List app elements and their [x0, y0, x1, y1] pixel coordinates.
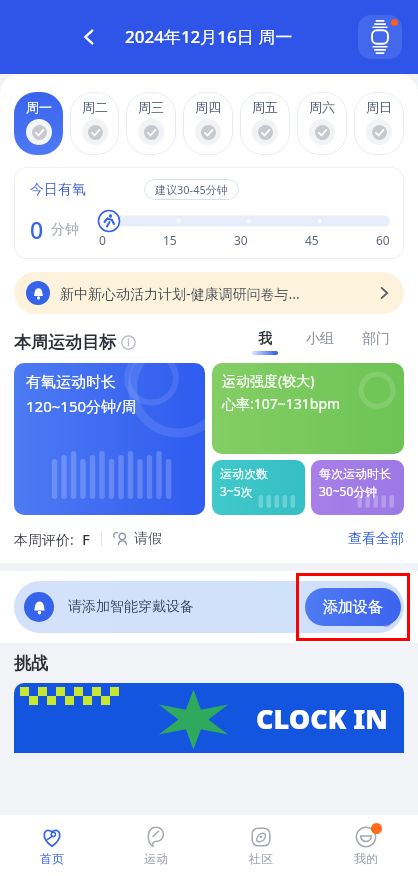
- button[interactable]: 部门: [348, 330, 404, 355]
- button[interactable]: Info: [121, 335, 136, 350]
- staticText: 心率:107~131bpm: [222, 394, 341, 413]
- button[interactable]: 周二: [70, 92, 119, 155]
- staticText: 3~5次: [220, 483, 253, 499]
- button[interactable]: 周六: [297, 92, 347, 155]
- staticText: 本周运动目标: [14, 332, 116, 353]
- button[interactable]: Watch device: [358, 15, 402, 59]
- button[interactable]: 运动强度(较大): [212, 363, 404, 454]
- staticText: 2024年12月16日 周一: [125, 25, 293, 48]
- button[interactable]: 我: [238, 330, 292, 355]
- button[interactable]: 今日有氧: [14, 167, 404, 259]
- staticText: 45: [305, 232, 319, 248]
- staticText: 建议30-45分钟: [155, 182, 228, 197]
- button[interactable]: 新中新心动活力计划-健康调研问卷与...: [14, 272, 404, 314]
- button[interactable]: 运动: [104, 815, 208, 876]
- staticText: 30: [234, 232, 248, 248]
- staticText: 运动强度(较大): [222, 371, 315, 390]
- button[interactable]: 我的: [313, 815, 418, 876]
- staticText: 请假: [134, 530, 162, 548]
- staticText: 新中新心动活力计划-健康调研问卷与...: [60, 284, 376, 303]
- staticText: 0: [30, 214, 44, 245]
- button[interactable]: 周一: [14, 92, 63, 155]
- staticText: 请添加智能穿戴设备: [68, 598, 194, 616]
- staticText: 周一: [26, 99, 52, 115]
- button[interactable]: 请添加智能穿戴设备: [14, 581, 404, 633]
- staticText: 30~50分钟: [319, 483, 378, 499]
- staticText: 部门: [362, 330, 390, 348]
- button[interactable]: 小组: [292, 330, 348, 355]
- button[interactable]: 首页: [0, 815, 104, 876]
- button[interactable]: 周三: [126, 92, 176, 155]
- staticText: 周五: [252, 99, 278, 115]
- staticText: 运动次数: [220, 466, 268, 481]
- staticText: 周二: [82, 99, 108, 115]
- button[interactable]: 请假: [113, 530, 162, 548]
- button[interactable]: 周四: [183, 92, 233, 155]
- button[interactable]: 周五: [240, 92, 290, 155]
- button[interactable]: 查看全部: [348, 530, 404, 548]
- staticText: 挑战: [14, 653, 48, 674]
- button[interactable]: 每次运动时长: [311, 460, 404, 515]
- button[interactable]: CLOCK IN: [14, 683, 404, 753]
- staticText: 15: [163, 232, 177, 248]
- staticText: 0: [99, 232, 106, 248]
- staticText: 周日: [366, 99, 392, 115]
- staticText: 运动: [144, 851, 168, 866]
- staticText: F: [82, 529, 90, 549]
- staticText: 60: [376, 232, 390, 248]
- staticText: 120~150分钟/周: [26, 396, 137, 416]
- staticText: 今日有氧: [30, 181, 86, 199]
- staticText: 社区: [249, 851, 273, 866]
- staticText: 我的: [354, 851, 378, 866]
- staticText: 本周评价:: [14, 530, 74, 549]
- staticText: 我: [258, 330, 272, 348]
- button[interactable]: 周日: [354, 92, 404, 155]
- staticText: 小组: [306, 330, 334, 348]
- staticText: 首页: [40, 851, 64, 866]
- button[interactable]: 添加设备: [305, 588, 401, 626]
- button[interactable]: 有氧运动时长: [14, 363, 205, 515]
- staticText: 周四: [195, 99, 221, 115]
- button[interactable]: Back: [72, 20, 106, 54]
- staticText: 分钟: [51, 221, 79, 239]
- staticText: 有氧运动时长: [26, 373, 116, 392]
- staticText: 周六: [309, 99, 335, 115]
- button[interactable]: 运动次数: [212, 460, 305, 515]
- staticText: 每次运动时长: [319, 466, 391, 481]
- staticText: 周三: [138, 99, 164, 115]
- button[interactable]: 社区: [208, 815, 313, 876]
- staticText: CLOCK IN: [256, 700, 388, 737]
- staticText: 添加设备: [323, 598, 383, 617]
